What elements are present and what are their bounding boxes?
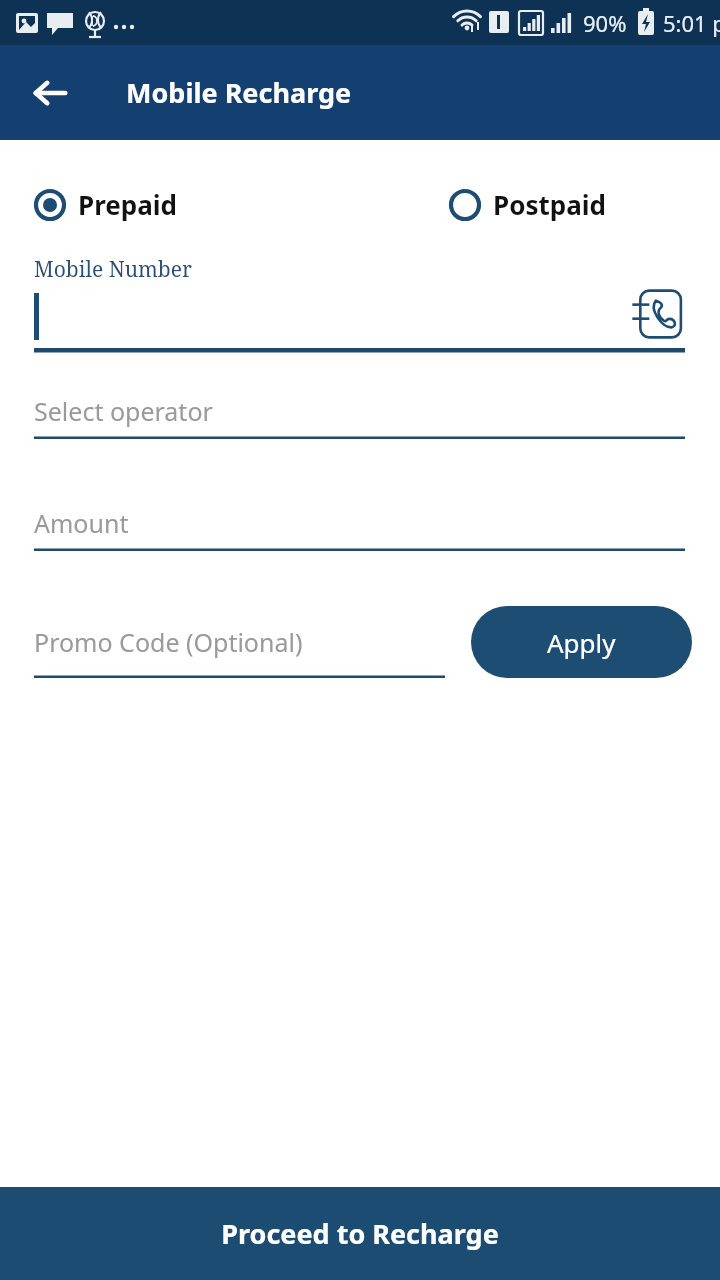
button[interactable]: Select operator (34, 382, 685, 439)
button[interactable]: Pick contact (0, 284, 720, 354)
staticText: Mobile Number (34, 255, 192, 284)
staticText: Promo Code (Optional) (34, 625, 303, 659)
staticText: Postpaid (493, 187, 606, 222)
button[interactable]: Pick contact (632, 288, 684, 340)
button[interactable]: Postpaid (449, 183, 606, 226)
button[interactable]: Promo Code (Optional) (34, 606, 445, 678)
button[interactable]: Prepaid (34, 183, 177, 226)
staticText: Prepaid (78, 187, 177, 222)
staticText: Apply (547, 625, 616, 660)
staticText: 90% (583, 8, 627, 38)
staticText: 5:01 pm (663, 8, 720, 38)
button[interactable]: Back (18, 61, 82, 125)
staticText: Mobile Recharge (126, 74, 352, 111)
staticText: Select operator (34, 394, 213, 428)
button[interactable]: Amount (34, 494, 685, 551)
button[interactable]: Apply (471, 606, 692, 678)
staticText: Amount (34, 506, 129, 540)
staticText: Proceed to Recharge (221, 1215, 499, 1252)
button[interactable]: Proceed to Recharge (0, 1187, 720, 1280)
